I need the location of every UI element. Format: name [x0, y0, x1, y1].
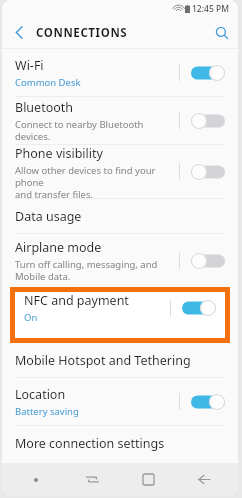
button[interactable]: Wi-Fi	[2, 49, 238, 96]
button[interactable]: Toggle on	[191, 394, 225, 410]
button[interactable]: Location	[2, 378, 238, 425]
button[interactable]: Menu	[14, 463, 58, 496]
staticText: Mobile Hotspot and Tethering	[15, 352, 191, 369]
button[interactable]: Recents	[70, 463, 114, 496]
button[interactable]: Mobile Hotspot and Tethering	[2, 343, 238, 377]
button[interactable]: NFC and payment	[15, 292, 225, 324]
button[interactable]: Back	[182, 463, 226, 496]
button[interactable]: Phone visibility	[2, 145, 238, 198]
staticText: Data usage	[15, 208, 82, 225]
button[interactable]: Toggle on	[191, 65, 225, 81]
button[interactable]: Search	[206, 17, 238, 48]
staticText: Bluetooth	[15, 99, 74, 116]
staticText: Connect to nearby Bluetooth devices.	[15, 118, 179, 143]
staticText: More connection settings	[15, 435, 165, 452]
button[interactable]: Toggle on	[182, 300, 216, 316]
button[interactable]: Toggle off	[191, 253, 225, 269]
button[interactable]: Back	[2, 17, 36, 48]
staticText: CONNECTIONS	[36, 25, 128, 41]
staticText: Allow other devices to find your phone a…	[15, 164, 179, 198]
button[interactable]: Home	[126, 463, 170, 496]
staticText: Battery saving	[15, 405, 79, 418]
staticText: Wi-Fi	[15, 57, 44, 74]
staticText: Airplane mode	[15, 239, 102, 256]
staticText: Phone visibility	[15, 145, 103, 162]
staticText: Turn off calling, messaging, and Mobile …	[15, 258, 158, 283]
button[interactable]: Toggle off	[191, 113, 225, 129]
staticText: 12:45 PM	[192, 3, 229, 15]
button[interactable]: More connection settings	[2, 426, 238, 460]
staticText: Location	[15, 386, 66, 403]
staticText: Common Desk	[15, 76, 81, 89]
button[interactable]: Bluetooth	[2, 97, 238, 144]
button[interactable]: Toggle off	[191, 164, 225, 180]
button[interactable]: Airplane mode	[2, 234, 238, 287]
staticText: NFC and payment	[24, 292, 129, 309]
staticText: On	[24, 311, 38, 324]
button[interactable]: Data usage	[2, 199, 238, 233]
